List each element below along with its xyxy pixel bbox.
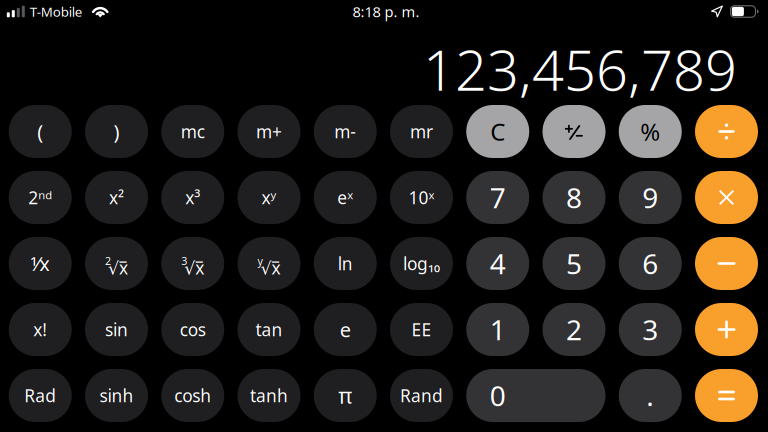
staticText: 3 <box>181 254 187 268</box>
staticText: 10ˣ <box>408 186 434 209</box>
button[interactable]: π <box>314 369 377 422</box>
button[interactable]: Rand <box>390 369 453 422</box>
staticText: cos <box>180 318 206 341</box>
staticText: 6 <box>642 245 658 282</box>
staticText: m- <box>334 120 356 143</box>
button[interactable]: Rad <box>9 369 72 422</box>
staticText: 5 <box>566 245 582 282</box>
staticText: eˣ <box>337 186 353 209</box>
staticText: mc <box>181 120 205 143</box>
button[interactable]: Cube root <box>161 237 224 290</box>
button[interactable]: sin <box>85 303 148 356</box>
button[interactable]: EE <box>390 303 453 356</box>
button[interactable]: Multiply <box>695 171 758 224</box>
button[interactable]: x! <box>9 303 72 356</box>
staticText: . <box>646 377 654 414</box>
staticText: π <box>338 381 352 410</box>
staticText: tan <box>255 318 282 341</box>
staticText: x! <box>33 318 47 341</box>
staticText: ln <box>338 252 353 275</box>
staticText: 8 <box>566 179 582 216</box>
button[interactable]: 0 <box>466 369 605 422</box>
button[interactable]: C <box>466 105 529 158</box>
button[interactable]: 5 <box>542 237 605 290</box>
button[interactable]: % <box>619 105 682 158</box>
button[interactable]: Plus <box>695 303 758 356</box>
staticText: sin <box>105 318 128 341</box>
button[interactable]: 10ˣ <box>390 171 453 224</box>
staticText: 2 <box>566 311 582 348</box>
button[interactable]: mc <box>161 105 224 158</box>
staticText: C <box>490 116 505 147</box>
staticText: ⅟x <box>30 250 50 277</box>
staticText: tanh <box>250 384 288 407</box>
staticText: EE <box>411 318 431 341</box>
staticText: e <box>340 316 351 343</box>
button[interactable]: Divide <box>695 105 758 158</box>
staticText: 1 <box>490 311 506 348</box>
staticText: ) <box>113 118 119 145</box>
staticText: x² <box>109 186 124 209</box>
button[interactable]: Equals <box>695 369 758 422</box>
button[interactable]: x³ <box>161 171 224 224</box>
button[interactable]: 1 <box>466 303 529 356</box>
button[interactable]: 2ⁿᵈ <box>9 171 72 224</box>
staticText: m+ <box>256 120 282 143</box>
button[interactable]: ⅟x <box>9 237 72 290</box>
button[interactable]: cosh <box>161 369 224 422</box>
staticText: √x̅ <box>108 256 128 279</box>
button[interactable]: m- <box>314 105 377 158</box>
button[interactable]: log₁₀ <box>390 237 453 290</box>
button[interactable]: mr <box>390 105 453 158</box>
button[interactable]: Minus <box>695 237 758 290</box>
staticText: Rad <box>24 384 56 407</box>
button[interactable]: cos <box>161 303 224 356</box>
button[interactable]: ( <box>9 105 72 158</box>
button[interactable]: x² <box>85 171 148 224</box>
button[interactable]: 9 <box>619 171 682 224</box>
staticText: mr <box>410 120 433 143</box>
button[interactable]: 7 <box>466 171 529 224</box>
staticText: 123,456,789 <box>423 32 737 106</box>
button[interactable]: 4 <box>466 237 529 290</box>
button[interactable]: xʸ <box>237 171 300 224</box>
button[interactable]: ) <box>85 105 148 158</box>
staticText: % <box>640 116 660 147</box>
staticText: x³ <box>185 186 200 209</box>
button[interactable]: Nth root <box>237 237 300 290</box>
button[interactable]: 6 <box>619 237 682 290</box>
staticText: 9 <box>642 179 658 216</box>
staticText: 4 <box>490 245 506 282</box>
staticText: xʸ <box>261 186 276 209</box>
button[interactable]: Plus or minus <box>542 105 605 158</box>
button[interactable]: 2 <box>542 303 605 356</box>
button[interactable]: e <box>314 303 377 356</box>
button[interactable]: 8 <box>542 171 605 224</box>
staticText: 8:18 p. m. <box>352 2 419 21</box>
staticText: 2ⁿᵈ <box>28 186 52 209</box>
button[interactable]: m+ <box>237 105 300 158</box>
staticText: ( <box>37 118 43 145</box>
staticText: √x̅ <box>260 256 280 279</box>
button[interactable]: tanh <box>237 369 300 422</box>
staticText: sinh <box>99 384 133 407</box>
staticText: 7 <box>490 179 506 216</box>
staticText: Rand <box>400 384 443 407</box>
button[interactable]: . <box>619 369 682 422</box>
staticText: 0 <box>490 377 506 414</box>
button[interactable]: eˣ <box>314 171 377 224</box>
button[interactable]: ln <box>314 237 377 290</box>
button[interactable]: sinh <box>85 369 148 422</box>
staticText: cosh <box>174 384 211 407</box>
button[interactable]: 3 <box>619 303 682 356</box>
staticText: T-Mobile <box>30 3 83 20</box>
button[interactable]: Square root <box>85 237 148 290</box>
staticText: y <box>257 254 262 268</box>
staticText: √x̅ <box>184 256 204 279</box>
button[interactable]: tan <box>237 303 300 356</box>
staticText: log₁₀ <box>403 252 440 275</box>
staticText: 2 <box>105 254 111 268</box>
staticText: 3 <box>642 311 658 348</box>
